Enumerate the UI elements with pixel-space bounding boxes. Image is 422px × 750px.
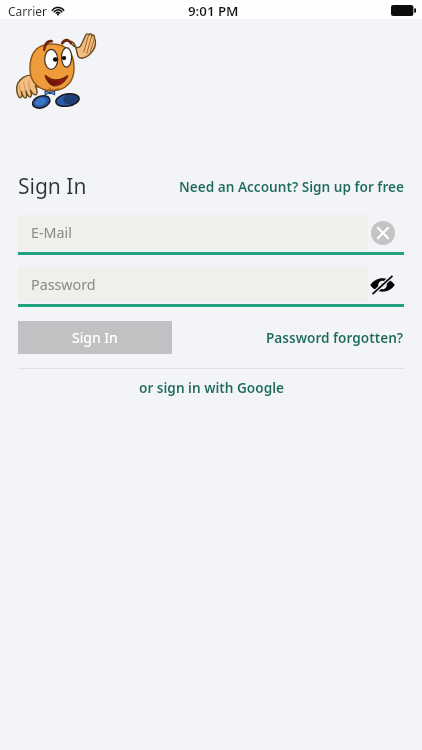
button[interactable]: or sign in with Google: [139, 378, 284, 397]
button[interactable]: Sign In: [18, 172, 87, 201]
staticText: 9:01 PM: [188, 2, 239, 20]
staticText: Sign In: [18, 172, 87, 201]
staticText: Sign In: [72, 328, 118, 347]
staticText: E-Mail: [31, 223, 72, 242]
button[interactable]: Clear e-mail: [371, 221, 395, 245]
button[interactable]: Password: [18, 267, 368, 302]
staticText: Password: [31, 275, 96, 294]
button[interactable]: Show password: [370, 275, 395, 295]
button[interactable]: Need an Account? Sign up for free: [179, 177, 404, 196]
staticText: Password forgotten?: [266, 328, 404, 347]
button[interactable]: E-Mail: [18, 215, 368, 250]
button[interactable]: Password forgotten?: [266, 328, 404, 347]
other: App mascot: [15, 28, 105, 118]
staticText: or sign in with Google: [139, 378, 284, 397]
button[interactable]: Sign In: [18, 321, 172, 354]
staticText: Carrier: [8, 3, 48, 19]
staticText: Need an Account? Sign up for free: [179, 177, 404, 196]
